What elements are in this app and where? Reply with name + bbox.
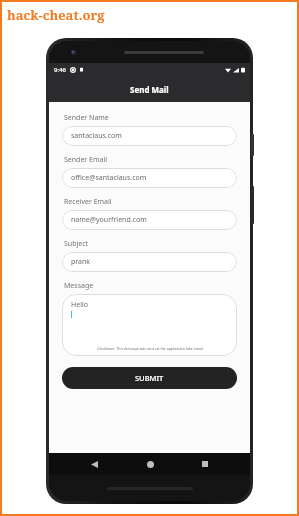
button[interactable]: name@yourfriend.com bbox=[62, 210, 237, 230]
staticText: Receiver Email bbox=[64, 197, 112, 207]
staticText: hack-cheat.org bbox=[7, 6, 105, 24]
staticText: prank bbox=[71, 257, 91, 267]
staticText: Sender Name bbox=[64, 113, 109, 123]
button[interactable]: prank bbox=[62, 252, 237, 272]
button[interactable]: Back bbox=[83, 453, 105, 475]
staticText: Message bbox=[64, 281, 94, 291]
button[interactable]: office@santaclaus.com bbox=[62, 168, 237, 188]
button[interactable]: Home bbox=[139, 453, 161, 475]
button[interactable]: santaclaus.com bbox=[62, 126, 237, 146]
button[interactable]: Hello bbox=[62, 294, 237, 356]
button[interactable]: Recent apps bbox=[194, 453, 216, 475]
staticText: Subject bbox=[64, 239, 89, 249]
staticText: Disclaimer: This message was sent via th… bbox=[97, 346, 203, 351]
staticText: santaclaus.com bbox=[71, 131, 122, 141]
button[interactable]: SUBMIT bbox=[62, 367, 237, 389]
staticText: office@santaclaus.com bbox=[71, 173, 147, 183]
staticText: Hello bbox=[71, 300, 88, 310]
staticText: name@yourfriend.com bbox=[71, 215, 147, 225]
staticText: 9:46 bbox=[54, 66, 66, 74]
staticText: SUBMIT bbox=[135, 373, 164, 383]
staticText: Sender Email bbox=[64, 155, 108, 165]
staticText: Send Mail bbox=[130, 84, 169, 95]
